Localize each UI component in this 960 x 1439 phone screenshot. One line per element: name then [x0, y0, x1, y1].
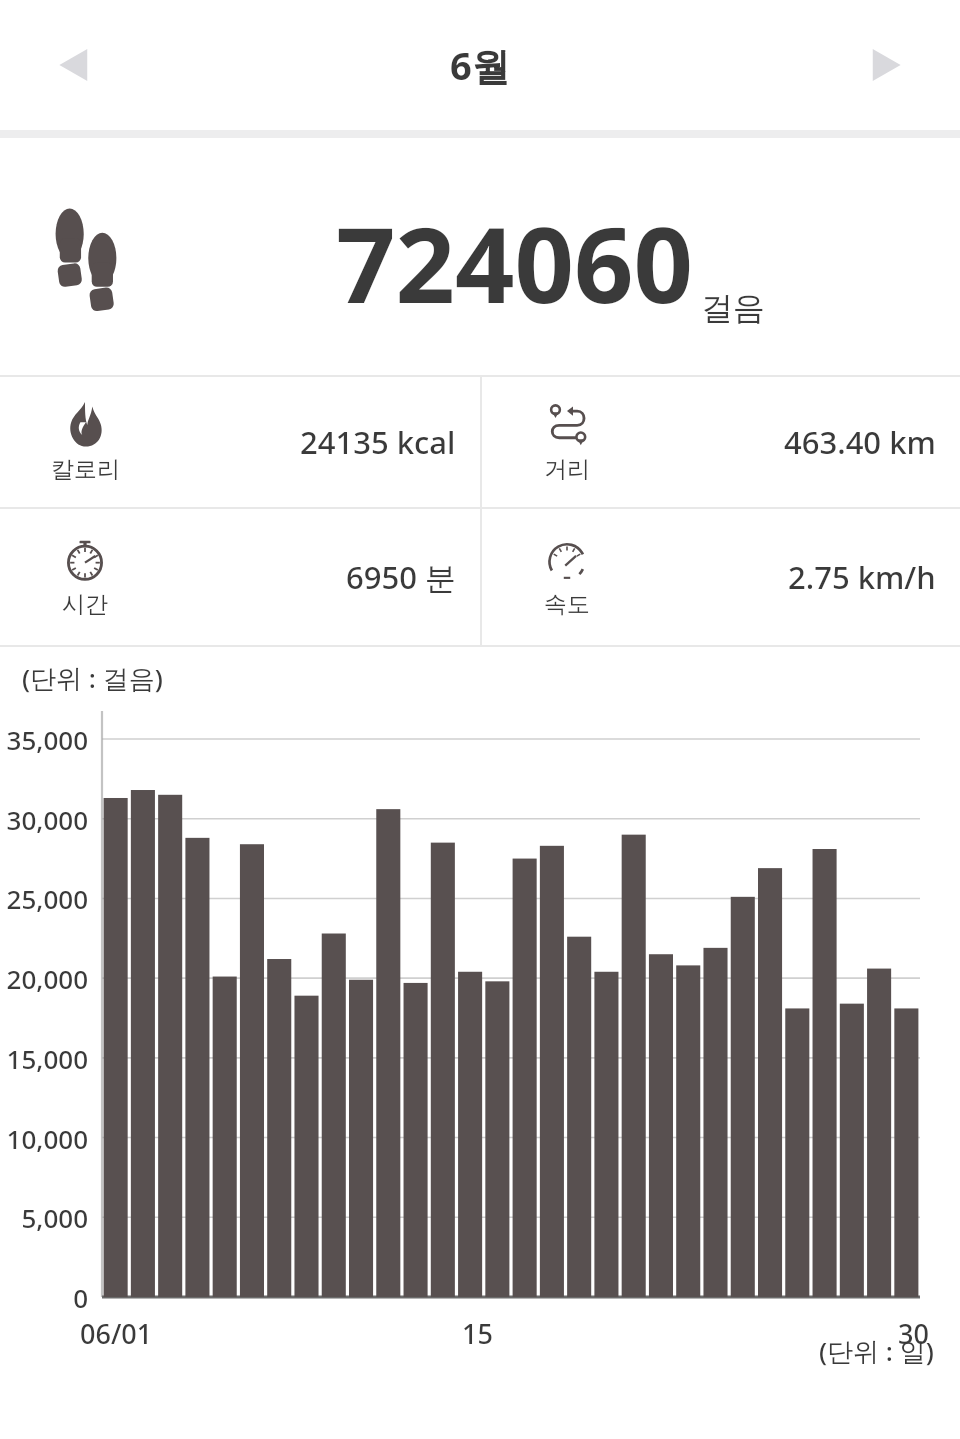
button[interactable]: 속도: [482, 509, 960, 645]
staticText: 25,000: [6, 881, 88, 916]
button[interactable]: 거리: [482, 377, 960, 507]
button[interactable]: Previous month: [44, 36, 102, 94]
staticText: 35,000: [6, 722, 88, 757]
staticText: 15: [462, 1315, 493, 1352]
staticText: (단위 : 걸음): [22, 660, 163, 696]
staticText: 거리: [544, 455, 590, 484]
button[interactable]: Next month: [858, 36, 916, 94]
staticText: 5,000: [21, 1200, 88, 1235]
staticText: 속도: [544, 590, 590, 619]
staticText: 30,000: [6, 802, 88, 837]
staticText: 6월: [450, 39, 510, 91]
staticText: 칼로리: [51, 455, 120, 484]
staticText: 20,000: [6, 961, 88, 996]
staticText: 06/01: [80, 1315, 153, 1352]
staticText: 시간: [62, 590, 108, 619]
staticText: 724060: [336, 192, 693, 334]
staticText: 걸음: [701, 288, 765, 328]
staticText: 24135 kcal: [300, 421, 456, 463]
button[interactable]: 칼로리: [0, 377, 480, 507]
staticText: 6950 분: [346, 556, 456, 598]
staticText: 30: [898, 1315, 929, 1352]
staticText: 10,000: [6, 1121, 88, 1156]
staticText: 463.40 km: [784, 421, 936, 463]
staticText: 0: [73, 1280, 88, 1315]
staticText: 15,000: [6, 1041, 88, 1076]
staticText: 2.75 km/h: [788, 556, 936, 598]
button[interactable]: 시간: [0, 509, 480, 645]
staticText: (단위 : 일): [819, 1333, 934, 1369]
